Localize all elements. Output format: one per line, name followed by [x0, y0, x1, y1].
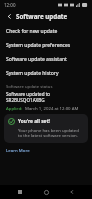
button[interactable]: Home	[40, 186, 52, 198]
button[interactable]: Software update assistant	[0, 52, 92, 66]
staticText: System update history	[6, 70, 59, 77]
staticText: Your phone has been updated to the lates…	[18, 127, 84, 139]
button[interactable]: System update preferences	[0, 38, 92, 52]
button[interactable]: System update history	[0, 66, 92, 80]
button[interactable]: Back	[4, 11, 14, 21]
staticText: Software update assistant	[6, 56, 67, 63]
staticText: You're all set!	[18, 118, 50, 125]
staticText: Software update status	[6, 84, 53, 90]
button[interactable]: Check for new update	[0, 24, 92, 38]
button[interactable]: Recent apps	[14, 186, 26, 198]
button[interactable]: Back	[66, 186, 78, 198]
button[interactable]: You're all set!	[4, 114, 88, 143]
staticText: Software update	[16, 12, 68, 20]
staticText: System update preferences	[6, 42, 71, 49]
button[interactable]: Learn More	[5, 146, 31, 154]
staticText: Software updated to SR2BUSQO1AXBG	[6, 91, 86, 103]
staticText: Learn More	[6, 147, 30, 153]
staticText: Check for new update	[6, 28, 58, 35]
staticText: 12:00	[4, 2, 16, 8]
staticText: March 1, 2024 at 12:00 AM	[25, 105, 79, 111]
staticText: Applied:	[6, 105, 23, 111]
